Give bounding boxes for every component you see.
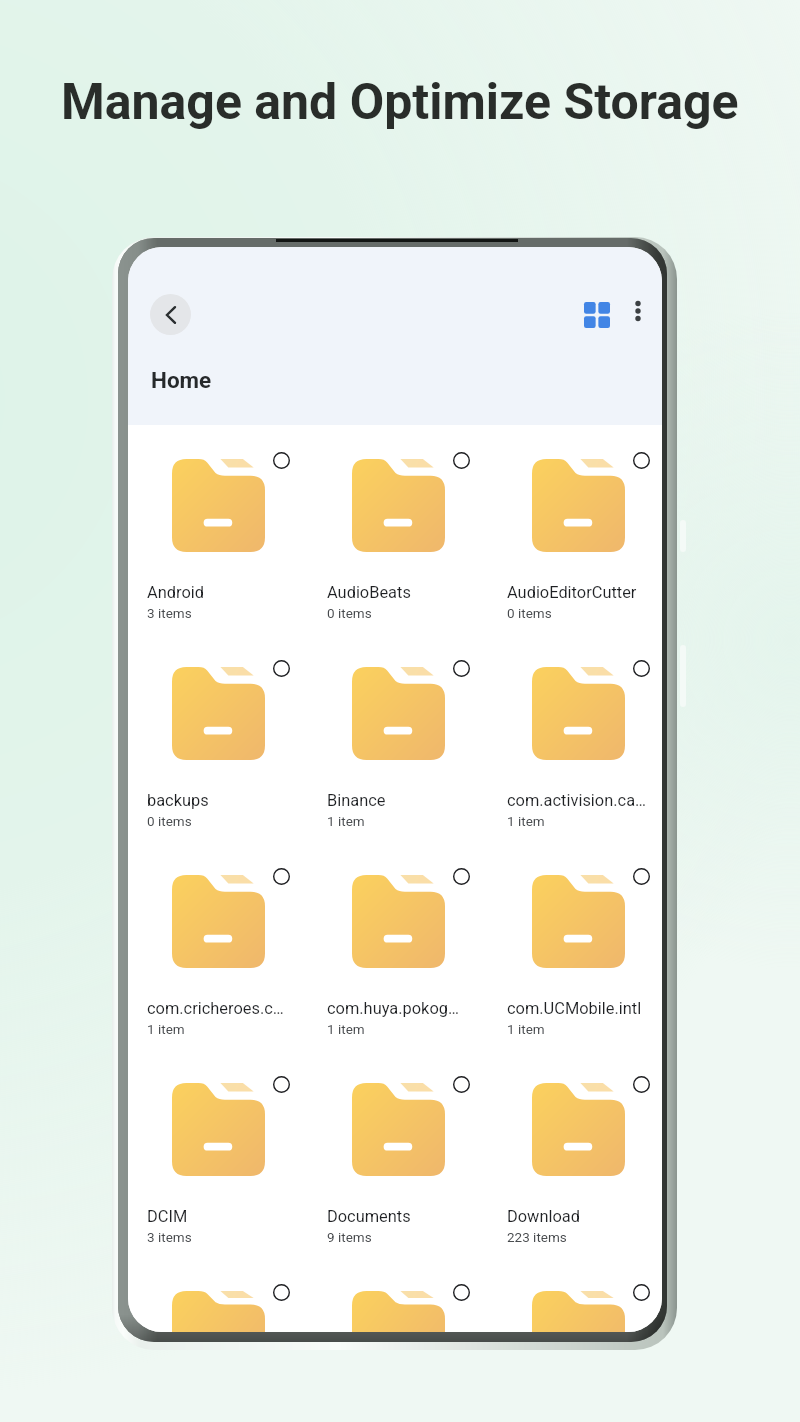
staticText: Home bbox=[151, 367, 212, 393]
staticText: com.UCMobile.intl bbox=[507, 999, 642, 1018]
staticText: Documents bbox=[327, 1207, 411, 1226]
staticText: 3 items bbox=[147, 605, 192, 621]
button[interactable]: com.cricheroes.c… bbox=[128, 841, 308, 1049]
staticText: 223 items bbox=[507, 1229, 567, 1245]
staticText: 0 items bbox=[147, 813, 192, 829]
staticText: Binance bbox=[327, 791, 386, 810]
staticText: backups bbox=[147, 791, 209, 810]
button[interactable]: com.huya.pokog… bbox=[308, 841, 488, 1049]
button[interactable]: DCIM bbox=[128, 1049, 308, 1257]
button[interactable]: b bbox=[308, 1257, 488, 1332]
staticText: AudioEditorCutter bbox=[507, 583, 637, 602]
button[interactable]: Documents bbox=[308, 1049, 488, 1257]
button[interactable]: c bbox=[488, 1257, 662, 1332]
button[interactable]: com.UCMobile.intl bbox=[488, 841, 662, 1049]
button[interactable]: Binance bbox=[308, 633, 488, 841]
staticText: Download bbox=[507, 1207, 580, 1226]
staticText: Android bbox=[147, 583, 204, 602]
staticText: com.activision.ca… bbox=[507, 791, 647, 810]
staticText: 1 item bbox=[327, 813, 365, 829]
button[interactable]: backups bbox=[128, 633, 308, 841]
staticText: com.cricheroes.c… bbox=[147, 999, 284, 1018]
staticText: 0 items bbox=[507, 605, 552, 621]
button[interactable]: AudioEditorCutter bbox=[488, 425, 662, 633]
button[interactable]: AudioBeats bbox=[308, 425, 488, 633]
button[interactable]: More options bbox=[620, 293, 656, 329]
staticText: 1 item bbox=[507, 813, 545, 829]
staticText: com.huya.pokog… bbox=[327, 999, 459, 1018]
button[interactable]: com.activision.ca… bbox=[488, 633, 662, 841]
staticText: DCIM bbox=[147, 1207, 188, 1226]
staticText: 1 item bbox=[327, 1021, 365, 1037]
button[interactable]: Back bbox=[150, 294, 191, 335]
button[interactable]: Android bbox=[128, 425, 308, 633]
button[interactable]: Download bbox=[488, 1049, 662, 1257]
staticText: Manage and Optimize Storage bbox=[61, 73, 739, 132]
button[interactable]: Grid view bbox=[574, 292, 620, 338]
staticText: 1 item bbox=[147, 1021, 185, 1037]
staticText: 1 item bbox=[507, 1021, 545, 1037]
staticText: 0 items bbox=[327, 605, 372, 621]
button[interactable]: a bbox=[128, 1257, 308, 1332]
staticText: 9 items bbox=[327, 1229, 372, 1245]
staticText: AudioBeats bbox=[327, 583, 411, 602]
staticText: 3 items bbox=[147, 1229, 192, 1245]
